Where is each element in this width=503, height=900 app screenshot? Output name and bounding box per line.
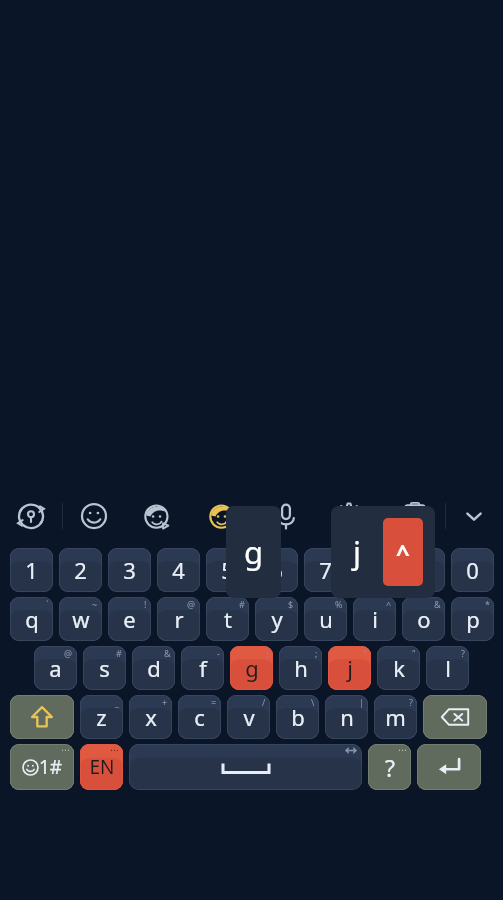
button[interactable]: y bbox=[255, 597, 298, 641]
staticText: 1 bbox=[25, 555, 38, 585]
button[interactable]: Translate bbox=[7, 492, 55, 540]
staticText: u bbox=[319, 604, 333, 634]
button[interactable]: i bbox=[353, 597, 396, 641]
button[interactable]: u bbox=[304, 597, 347, 641]
button[interactable]: 2 bbox=[59, 548, 102, 592]
button[interactable]: Symbols and emoji bbox=[10, 744, 74, 790]
staticText: b bbox=[291, 702, 305, 732]
staticText: * bbox=[485, 598, 490, 610]
button[interactable]: f bbox=[181, 646, 224, 690]
button[interactable]: Shift bbox=[10, 695, 74, 739]
button[interactable]: 1 bbox=[10, 548, 53, 592]
staticText: k bbox=[393, 653, 405, 683]
button[interactable]: Punctuation bbox=[368, 744, 411, 790]
staticText: \ bbox=[311, 696, 315, 708]
button[interactable]: x bbox=[129, 695, 172, 739]
button[interactable]: v bbox=[227, 695, 270, 739]
button[interactable]: Backspace bbox=[423, 695, 487, 739]
staticText: g bbox=[245, 653, 259, 683]
button[interactable]: 3 bbox=[108, 548, 151, 592]
button[interactable]: 0 bbox=[451, 548, 494, 592]
staticText: - bbox=[217, 647, 220, 659]
staticText: | bbox=[359, 696, 364, 708]
button[interactable]: Sticker bbox=[133, 492, 181, 540]
staticText: ⋯ bbox=[398, 745, 407, 755]
button[interactable]: l bbox=[426, 646, 469, 690]
button[interactable]: 7 bbox=[304, 548, 347, 592]
button[interactable]: m bbox=[374, 695, 417, 739]
button[interactable]: o bbox=[402, 597, 445, 641]
button[interactable]: 4 bbox=[157, 548, 200, 592]
button[interactable]: e bbox=[108, 597, 151, 641]
staticText: c bbox=[194, 702, 205, 732]
button[interactable]: j bbox=[328, 646, 371, 690]
staticText: " bbox=[412, 647, 416, 659]
staticText: z bbox=[96, 702, 107, 732]
staticText: x bbox=[145, 702, 157, 732]
staticText: m bbox=[385, 702, 406, 732]
button[interactable]: r bbox=[157, 597, 200, 641]
staticText: @ bbox=[64, 647, 73, 659]
button[interactable]: Collapse keyboard bbox=[450, 492, 498, 540]
staticText: n bbox=[340, 702, 354, 732]
staticText: : bbox=[266, 647, 269, 659]
button[interactable]: 9 bbox=[402, 548, 445, 592]
button[interactable]: t bbox=[206, 597, 249, 641]
staticText: l bbox=[445, 653, 451, 683]
button[interactable]: q bbox=[10, 597, 53, 641]
button[interactable]: g bbox=[230, 646, 273, 690]
staticText: 0 bbox=[466, 555, 479, 585]
staticText: q bbox=[25, 604, 39, 634]
staticText: g bbox=[244, 531, 264, 573]
button[interactable]: Clipboard bbox=[391, 492, 439, 540]
button[interactable]: z bbox=[80, 695, 123, 739]
button[interactable]: h bbox=[279, 646, 322, 690]
button[interactable]: a bbox=[34, 646, 77, 690]
button[interactable]: p bbox=[451, 597, 494, 641]
button[interactable]: d bbox=[132, 646, 175, 690]
button[interactable]: Voice input bbox=[262, 492, 310, 540]
staticText: ~ bbox=[92, 598, 98, 610]
staticText: $ bbox=[288, 598, 294, 610]
staticText: j bbox=[347, 653, 353, 683]
button[interactable]: w bbox=[59, 597, 102, 641]
button[interactable]: Enter bbox=[417, 744, 481, 790]
button[interactable]: 8 bbox=[353, 548, 396, 592]
staticText: ' bbox=[364, 647, 367, 659]
staticText: a bbox=[49, 653, 62, 683]
staticText: ⋯ bbox=[110, 745, 119, 755]
staticText: d bbox=[147, 653, 161, 683]
staticText: ` bbox=[46, 598, 49, 610]
button[interactable]: k bbox=[377, 646, 420, 690]
staticText: & bbox=[434, 598, 441, 610]
button[interactable]: 6 bbox=[255, 548, 298, 592]
staticText: ? bbox=[385, 752, 395, 783]
staticText: 6 bbox=[270, 555, 283, 585]
button[interactable]: n bbox=[325, 695, 368, 739]
button[interactable]: Emoji bbox=[70, 492, 118, 540]
staticText: f bbox=[199, 653, 207, 683]
staticText: ^ bbox=[386, 598, 392, 610]
staticText: _ bbox=[115, 696, 119, 708]
staticText: ^ bbox=[396, 536, 410, 569]
button[interactable]: b bbox=[276, 695, 319, 739]
staticText: % bbox=[335, 598, 343, 610]
staticText: r bbox=[174, 604, 184, 634]
staticText: ! bbox=[144, 598, 147, 610]
button[interactable]: Space bbox=[129, 744, 362, 790]
staticText: p bbox=[466, 604, 480, 634]
button[interactable]: Change language bbox=[80, 744, 123, 790]
staticText: ? bbox=[461, 647, 465, 659]
staticText: # bbox=[116, 647, 122, 659]
button[interactable]: s bbox=[83, 646, 126, 690]
staticText: j bbox=[353, 531, 361, 573]
button[interactable]: Avatar bbox=[198, 492, 246, 540]
button[interactable]: c bbox=[178, 695, 221, 739]
staticText: e bbox=[123, 604, 136, 634]
staticText: t bbox=[224, 604, 232, 634]
button[interactable]: 5 bbox=[206, 548, 249, 592]
staticText: i bbox=[372, 604, 378, 634]
button[interactable]: Settings bbox=[325, 492, 373, 540]
staticText: s bbox=[99, 653, 110, 683]
